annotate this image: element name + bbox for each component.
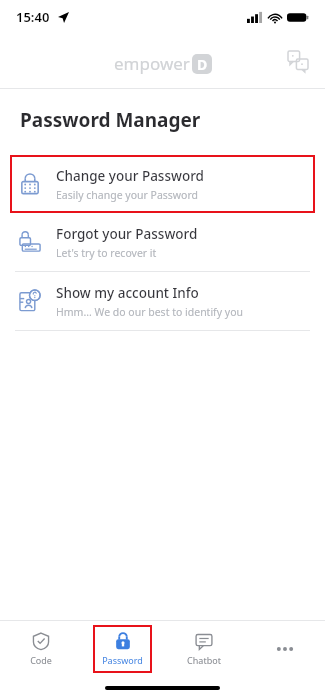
button[interactable]: Code [0,621,82,677]
staticText: empower [114,52,190,75]
staticText: Password [102,654,143,666]
staticText: Change your Password [56,167,204,185]
staticText: Let's try to recover it [56,246,157,260]
staticText: Password Manager [20,107,201,133]
button[interactable]: More options [244,621,325,677]
staticText: Chatbot [187,654,221,666]
staticText: Show my account Info [56,284,199,302]
staticText: Code [30,654,52,666]
staticText: D [197,55,208,74]
button[interactable]: Change your Password [10,155,315,213]
staticText: Hmm... We do our best to identify you [56,305,244,319]
staticText: 15:40 [16,8,50,26]
button[interactable]: Show my account Info [0,272,325,330]
button[interactable]: Password [93,625,152,673]
button[interactable]: Chatbot [163,621,244,677]
button[interactable]: Translate language [283,46,313,76]
staticText: Easily change your Password [56,188,199,202]
staticText: Forgot your Password [56,225,198,243]
button[interactable]: Forgot your Password [0,213,325,271]
